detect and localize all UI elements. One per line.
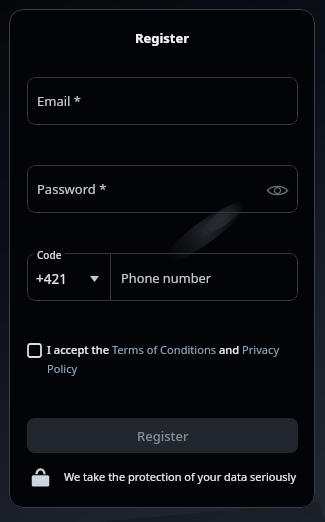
button[interactable]: Password * <box>27 165 298 213</box>
staticText: +421 <box>36 270 67 288</box>
staticText: Password * <box>37 180 107 198</box>
button[interactable]: Accept terms <box>26 342 42 358</box>
staticText: Email * <box>37 92 81 110</box>
button[interactable]: Email * <box>27 77 298 125</box>
staticText: Register <box>9 29 315 47</box>
button[interactable]: Register <box>27 418 298 453</box>
button[interactable]: I accept the Terms of Conditions and Pri… <box>47 342 298 376</box>
button[interactable]: Phone number <box>111 253 298 301</box>
other: Select country code <box>90 276 99 282</box>
staticText: Code <box>37 248 62 262</box>
button[interactable]: +421 <box>27 253 110 301</box>
staticText: Register <box>137 427 189 445</box>
staticText: We take the protection of your data seri… <box>64 469 297 484</box>
button[interactable]: Show password <box>264 177 290 203</box>
staticText: Phone number <box>121 269 212 286</box>
